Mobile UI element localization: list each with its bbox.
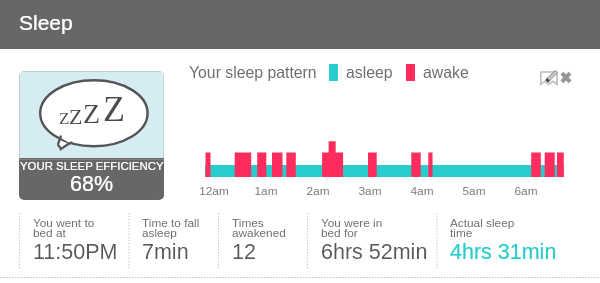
staticText: Time to fall asleep [142,216,200,240]
staticText: Sleep [19,11,73,34]
staticText: 7min [142,240,189,264]
button[interactable]: Sleep [0,0,600,49]
staticText: 12am [189,184,239,197]
button[interactable]: Z [19,71,164,200]
staticText: 4hrs 31min [450,240,557,264]
staticText: 2am [293,184,343,197]
staticText: You were in bed for [321,216,383,240]
staticText: 6am [501,184,551,197]
staticText: Z [83,98,101,129]
staticText: YOUR SLEEP EFFICIENCY [20,160,164,173]
staticText: 12 [232,240,256,264]
staticText: Z [69,104,83,128]
staticText: 1am [241,184,291,197]
staticText: Times awakened [232,216,286,240]
staticText: Z [103,89,125,129]
button[interactable]: Close [559,70,573,84]
staticText: 6hrs 52min [321,240,428,264]
staticText: 3am [345,184,395,197]
button[interactable]: Edit [540,71,560,85]
staticText: 68% [70,172,114,196]
staticText: Z [59,109,70,128]
staticText: Actual sleep time [450,216,515,240]
staticText: 11:50PM [33,240,118,264]
staticText: You went to bed at [33,216,95,240]
staticText: awake [423,64,469,82]
staticText: 4am [397,184,447,197]
staticText: Your sleep pattern [189,64,317,82]
staticText: asleep [346,64,393,82]
staticText: 5am [449,184,499,197]
